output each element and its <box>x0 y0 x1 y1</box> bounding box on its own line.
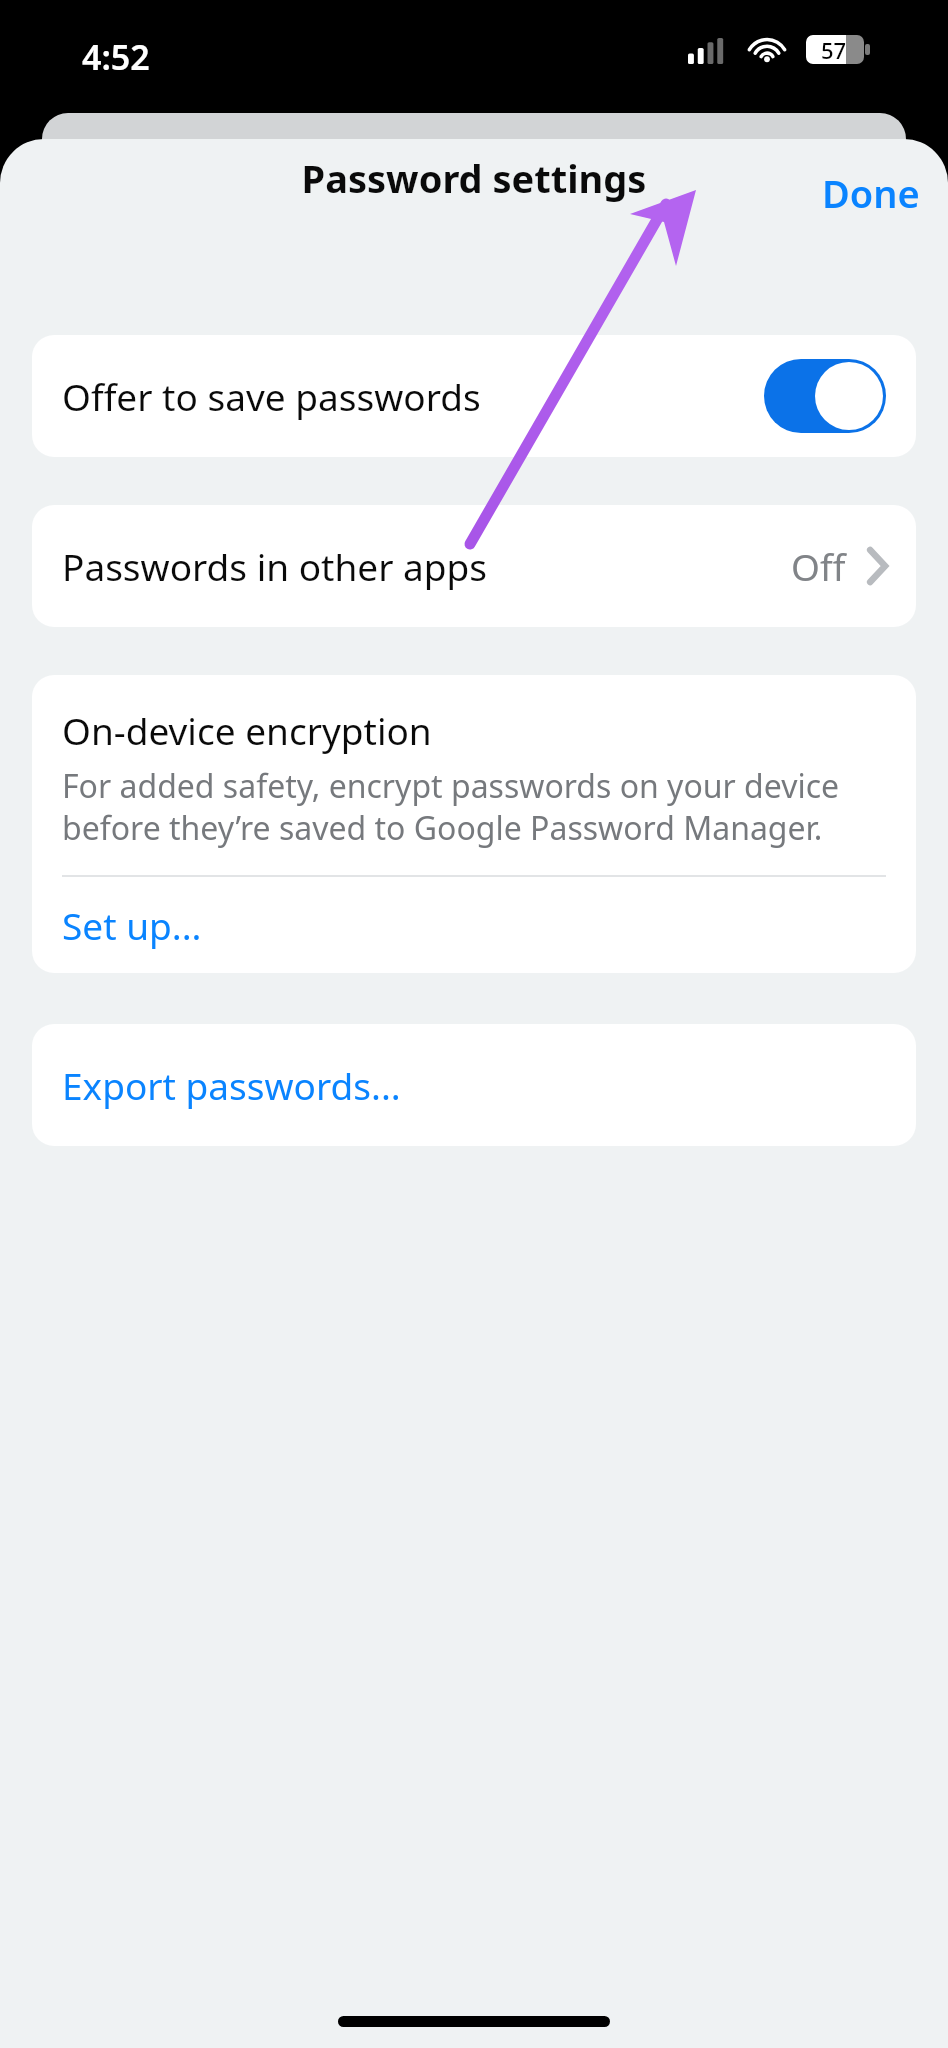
staticText: Offer to save passwords <box>62 371 764 421</box>
staticText: Set up... <box>62 900 202 950</box>
staticText: Done <box>822 167 920 219</box>
button[interactable]: Passwords in other apps <box>32 505 916 627</box>
staticText: For added safety, encrypt passwords on y… <box>62 764 886 849</box>
button[interactable]: Offer to save passwords <box>32 335 916 457</box>
staticText: On-device encryption <box>62 705 432 755</box>
staticText: Off <box>791 541 846 591</box>
staticText: 57 <box>821 35 847 64</box>
other: Offer to save passwords toggle, on <box>764 359 886 433</box>
button[interactable]: Export passwords... <box>32 1024 916 1146</box>
staticText: Passwords in other apps <box>62 541 791 591</box>
staticText: 4:52 <box>82 34 150 80</box>
button[interactable]: Done <box>794 140 948 220</box>
staticText: Export passwords... <box>62 1060 401 1110</box>
staticText: Password settings <box>0 152 948 204</box>
button[interactable]: Set up... <box>32 877 916 973</box>
